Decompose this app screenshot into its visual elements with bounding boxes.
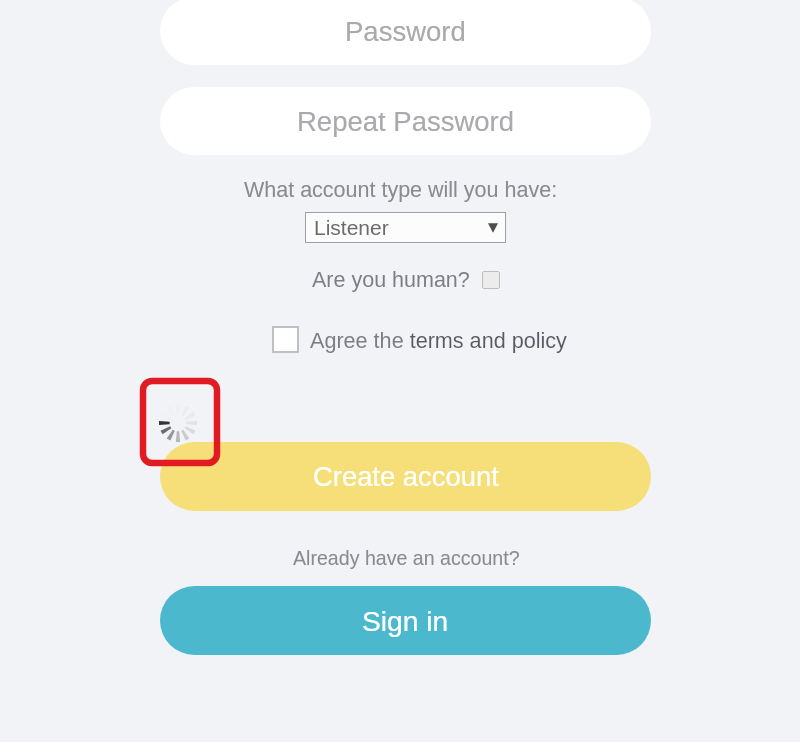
other: Loading [159,404,197,442]
staticText: Listener [314,216,389,239]
staticText: Sign in [362,605,449,637]
button[interactable]: Are you human? [312,268,500,292]
button[interactable]: Account type: Listener [305,212,506,243]
staticText: Agree the terms and policy [310,328,567,352]
staticText: Create account [313,461,499,492]
other: Are you human checkbox [482,271,500,289]
other: Agree terms checkbox [272,326,299,353]
staticText: Are you human? [312,268,470,292]
button[interactable]: Repeat password field [160,87,651,155]
button[interactable]: Create account [160,442,651,511]
button[interactable]: Password field [160,0,651,65]
staticText: Password [345,16,466,47]
staticText: What account type will you have: [244,178,558,202]
button[interactable]: Agree terms checkbox [272,326,567,353]
button[interactable]: Sign in [160,586,651,655]
staticText: Already have an account? [293,547,520,569]
staticText: Repeat Password [297,106,515,137]
